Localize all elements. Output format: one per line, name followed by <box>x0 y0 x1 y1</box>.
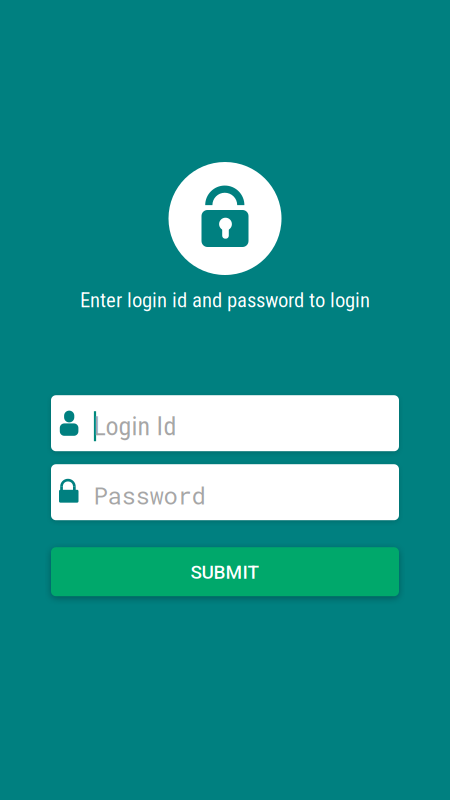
button[interactable]: Login Id <box>51 395 399 451</box>
staticText: Password <box>93 479 205 511</box>
button[interactable]: SUBMIT <box>51 547 399 596</box>
button[interactable]: Password <box>51 464 399 520</box>
staticText: Login Id <box>94 411 177 442</box>
staticText: SUBMIT <box>190 561 259 583</box>
staticText: Enter login id and password to login <box>80 288 370 312</box>
